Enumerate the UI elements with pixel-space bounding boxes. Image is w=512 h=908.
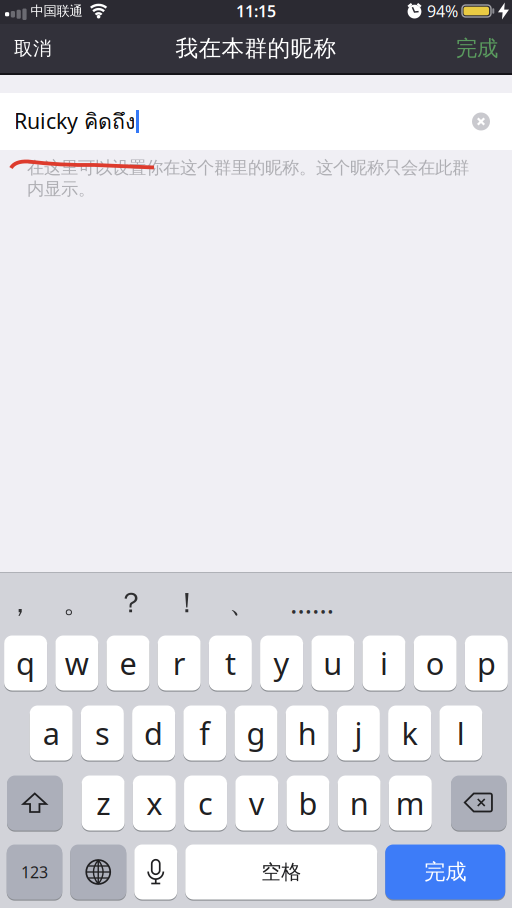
button[interactable]: k bbox=[388, 705, 431, 761]
button[interactable]: w bbox=[55, 635, 98, 691]
staticText: 取消 bbox=[14, 37, 52, 60]
staticText: Ruicky คิดถึง bbox=[14, 105, 135, 138]
button[interactable]: ， bbox=[6, 586, 34, 620]
button[interactable]: 、 bbox=[229, 586, 257, 620]
button[interactable]: q bbox=[4, 635, 47, 691]
staticText: h bbox=[298, 713, 317, 753]
staticText: 完成 bbox=[456, 35, 498, 62]
button[interactable]: p bbox=[465, 635, 508, 691]
button[interactable]: 完成 bbox=[456, 25, 512, 72]
staticText: q bbox=[16, 643, 35, 683]
button[interactable]: 123 bbox=[7, 844, 62, 900]
button[interactable]: 。 bbox=[63, 586, 91, 620]
staticText: 、 bbox=[229, 586, 257, 620]
staticText: g bbox=[246, 713, 265, 753]
staticText: j bbox=[354, 713, 362, 753]
staticText: 内显示。 bbox=[27, 178, 95, 200]
staticText: y bbox=[274, 643, 290, 683]
staticText: 。 bbox=[63, 586, 91, 620]
staticText: 123 bbox=[21, 861, 48, 883]
button[interactable]: d bbox=[132, 705, 175, 761]
staticText: s bbox=[95, 713, 110, 753]
staticText: ， bbox=[6, 586, 34, 620]
staticText: f bbox=[199, 713, 210, 753]
staticText: …… bbox=[290, 584, 334, 622]
button[interactable]: e bbox=[106, 635, 149, 691]
staticText: d bbox=[144, 713, 163, 753]
staticText: x bbox=[146, 783, 162, 823]
staticText: e bbox=[119, 643, 136, 683]
staticText: r bbox=[173, 643, 186, 683]
staticText: c bbox=[198, 783, 213, 823]
staticText: ？ bbox=[117, 586, 145, 620]
button[interactable]: c bbox=[184, 775, 227, 831]
button[interactable]: h bbox=[286, 705, 329, 761]
button[interactable]: t bbox=[209, 635, 252, 691]
button[interactable]: u bbox=[311, 635, 354, 691]
button[interactable]: Shift bbox=[7, 775, 62, 831]
staticText: k bbox=[402, 713, 418, 753]
staticText: p bbox=[477, 643, 496, 683]
staticText: u bbox=[323, 643, 342, 683]
button[interactable]: i bbox=[362, 635, 405, 691]
button[interactable]: 取消 bbox=[0, 27, 52, 70]
button[interactable]: j bbox=[337, 705, 380, 761]
staticText: n bbox=[350, 783, 369, 823]
staticText: 我在本群的昵称 bbox=[175, 35, 336, 62]
staticText: 空格 bbox=[261, 860, 301, 884]
button[interactable]: Clear text bbox=[472, 112, 512, 130]
button[interactable]: z bbox=[82, 775, 125, 831]
staticText: 中国联通 bbox=[31, 3, 83, 19]
staticText: 94% bbox=[427, 0, 458, 22]
button[interactable]: a bbox=[30, 705, 73, 761]
staticText: o bbox=[426, 643, 445, 683]
button[interactable]: f bbox=[183, 705, 226, 761]
staticText: w bbox=[65, 643, 89, 683]
staticText: b bbox=[298, 783, 317, 823]
button[interactable]: l bbox=[439, 705, 482, 761]
staticText: 11:15 bbox=[236, 0, 276, 22]
staticText: ！ bbox=[173, 586, 201, 620]
staticText: i bbox=[380, 643, 388, 683]
button[interactable]: y bbox=[260, 635, 303, 691]
button[interactable]: x bbox=[133, 775, 176, 831]
button[interactable]: r bbox=[158, 635, 201, 691]
staticText: t bbox=[225, 643, 236, 683]
button[interactable]: g bbox=[234, 705, 277, 761]
button[interactable]: ？ bbox=[117, 586, 145, 620]
button[interactable]: s bbox=[81, 705, 124, 761]
staticText: m bbox=[396, 783, 425, 823]
button[interactable]: Next keyboard bbox=[70, 844, 126, 900]
staticText: 在这里可以设置你在这个群里的昵称。这个昵称只会在此群 bbox=[27, 157, 469, 178]
staticText: l bbox=[457, 713, 465, 753]
button[interactable]: Delete bbox=[451, 775, 506, 831]
button[interactable]: b bbox=[286, 775, 329, 831]
staticText: 完成 bbox=[424, 859, 466, 885]
button[interactable]: n bbox=[338, 775, 381, 831]
button[interactable]: Dictation bbox=[134, 844, 177, 900]
button[interactable]: o bbox=[414, 635, 457, 691]
button[interactable]: …… bbox=[290, 584, 334, 622]
button[interactable]: 完成 bbox=[385, 844, 505, 900]
button[interactable]: 空格 bbox=[185, 844, 377, 900]
button[interactable]: m bbox=[389, 775, 432, 831]
staticText: a bbox=[43, 713, 60, 753]
button[interactable]: v bbox=[235, 775, 278, 831]
staticText: v bbox=[249, 783, 265, 823]
button[interactable]: ！ bbox=[173, 586, 201, 620]
staticText: z bbox=[96, 783, 110, 823]
